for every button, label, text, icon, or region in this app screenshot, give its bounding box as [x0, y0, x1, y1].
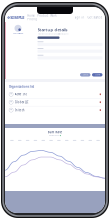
staticText: Submit — [95, 74, 99, 76]
button[interactable]: SIMPLE — [7, 15, 24, 20]
staticText: Sign in Get started — [74, 16, 102, 19]
button[interactable]: Initech — [9, 106, 101, 114]
staticText: Organizations list — [9, 85, 34, 88]
staticText: Burn Rate — [47, 130, 62, 134]
button[interactable]: Globex LLC — [9, 98, 101, 106]
button[interactable]: Cancel — [80, 73, 90, 76]
staticText: Cancel — [83, 74, 88, 76]
staticText: Globex LLC — [15, 100, 29, 104]
staticText: SIMPLE — [10, 15, 24, 20]
button[interactable]: Acme Inc — [9, 90, 101, 98]
staticText: Startup details — [37, 27, 67, 32]
button[interactable]: Sign in Get started — [74, 16, 102, 19]
staticText: Home Product Work Pricing — [27, 14, 57, 21]
staticText: Acme Inc — [15, 92, 27, 96]
staticText: Monthly spend — [49, 135, 59, 136]
button[interactable]: Home Product Work Pricing — [27, 14, 57, 21]
staticText: Your company — [12, 33, 23, 34]
button[interactable]: Submit — [92, 73, 102, 76]
staticText: Initech — [15, 108, 25, 112]
staticText: Tell us more about your startup, it will… — [37, 33, 68, 35]
